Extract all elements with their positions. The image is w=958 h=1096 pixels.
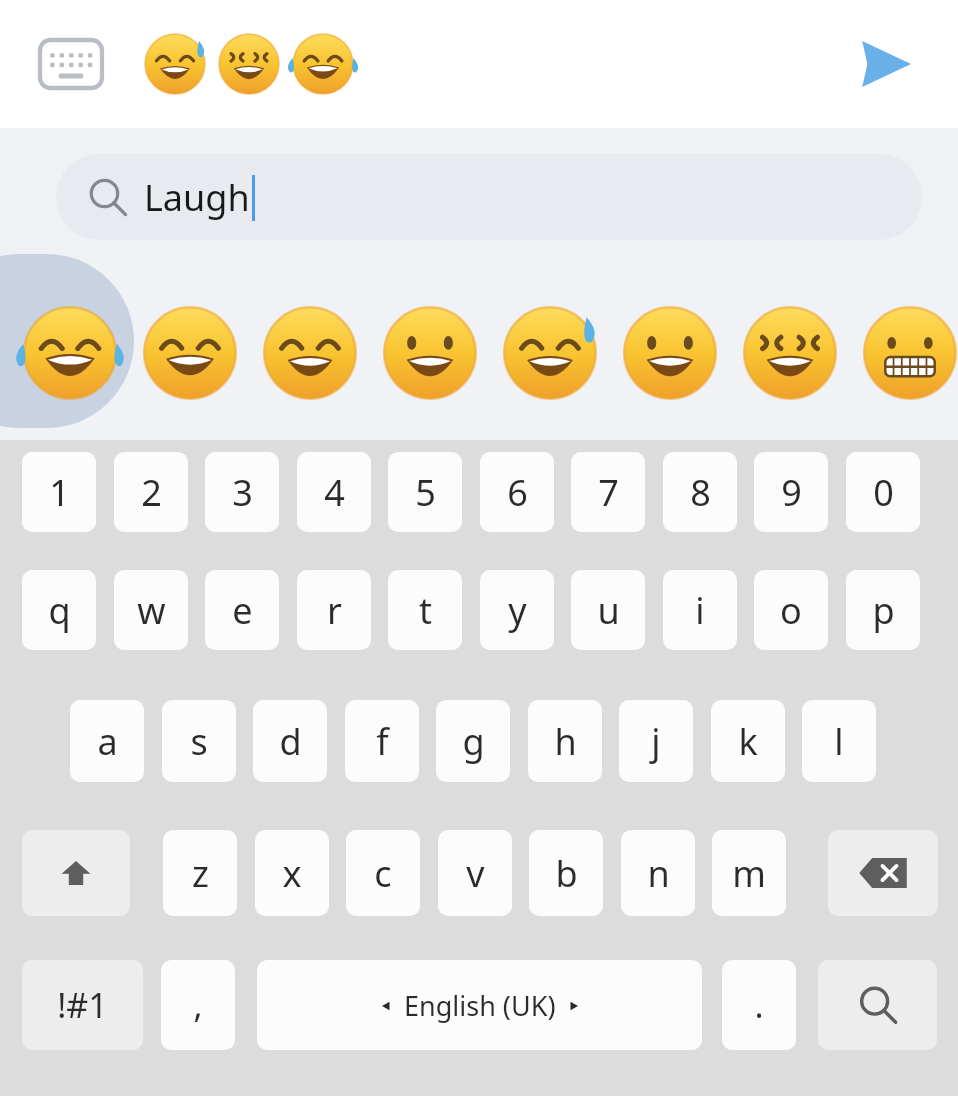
- button[interactable]: a: [70, 700, 144, 782]
- button[interactable]: 1: [22, 452, 96, 532]
- button[interactable]: Emoji result: [610, 293, 730, 413]
- staticText: z: [192, 849, 209, 898]
- staticText: k: [738, 717, 758, 766]
- button[interactable]: Emoji result: [250, 293, 370, 413]
- staticText: i: [695, 586, 705, 635]
- button[interactable]: Keyboard: [36, 38, 106, 90]
- button[interactable]: x: [255, 830, 329, 916]
- button[interactable]: Backspace: [828, 830, 938, 916]
- button[interactable]: h: [528, 700, 602, 782]
- button[interactable]: z: [163, 830, 237, 916]
- staticText: o: [780, 586, 802, 635]
- staticText: n: [647, 849, 670, 898]
- button[interactable]: b: [529, 830, 603, 916]
- button[interactable]: 6: [480, 452, 554, 532]
- staticText: w: [137, 586, 166, 635]
- staticText: 2: [141, 468, 162, 517]
- staticText: t: [419, 586, 432, 635]
- button[interactable]: l: [802, 700, 876, 782]
- staticText: c: [374, 849, 392, 898]
- button[interactable]: Space: [257, 960, 702, 1050]
- button[interactable]: m: [712, 830, 786, 916]
- staticText: x: [282, 849, 302, 898]
- button[interactable]: d: [253, 700, 327, 782]
- staticText: 6: [507, 468, 528, 517]
- staticText: r: [327, 586, 342, 635]
- button[interactable]: Recent emoji: [286, 27, 360, 101]
- button[interactable]: 8: [663, 452, 737, 532]
- staticText: 1: [49, 468, 70, 517]
- staticText: j: [651, 717, 661, 766]
- button[interactable]: Shift: [22, 830, 130, 916]
- staticText: l: [834, 717, 844, 766]
- button[interactable]: f: [345, 700, 419, 782]
- button[interactable]: .: [722, 960, 796, 1050]
- button[interactable]: e: [205, 570, 279, 650]
- button[interactable]: ,: [161, 960, 235, 1050]
- staticText: English (UK): [404, 987, 556, 1024]
- staticText: b: [555, 849, 578, 898]
- staticText: s: [190, 717, 208, 766]
- staticText: f: [376, 717, 389, 766]
- button[interactable]: 2: [114, 452, 188, 532]
- staticText: h: [554, 717, 577, 766]
- button[interactable]: k: [711, 700, 785, 782]
- staticText: 4: [324, 468, 345, 517]
- button[interactable]: Emoji result: [730, 293, 850, 413]
- staticText: a: [97, 717, 118, 766]
- button[interactable]: n: [621, 830, 695, 916]
- staticText: y: [508, 586, 527, 635]
- button[interactable]: s: [162, 700, 236, 782]
- staticText: ,: [193, 982, 203, 1028]
- button[interactable]: p: [846, 570, 920, 650]
- button[interactable]: j: [619, 700, 693, 782]
- button[interactable]: u: [571, 570, 645, 650]
- button[interactable]: w: [114, 570, 188, 650]
- button[interactable]: 4: [297, 452, 371, 532]
- staticText: 7: [598, 468, 619, 517]
- staticText: 8: [690, 468, 711, 517]
- staticText: q: [48, 586, 71, 635]
- staticText: !#1: [57, 982, 108, 1028]
- button[interactable]: v: [438, 830, 512, 916]
- button[interactable]: 0: [846, 452, 920, 532]
- staticText: Laugh: [144, 173, 250, 222]
- staticText: 9: [781, 468, 802, 517]
- staticText: p: [872, 586, 895, 635]
- button[interactable]: 3: [205, 452, 279, 532]
- staticText: .: [754, 982, 764, 1028]
- button[interactable]: Emoji result: [490, 293, 610, 413]
- button[interactable]: y: [480, 570, 554, 650]
- button[interactable]: Recent emoji: [212, 27, 286, 101]
- staticText: 0: [873, 468, 894, 517]
- button[interactable]: Search: [818, 960, 937, 1050]
- button[interactable]: 9: [754, 452, 828, 532]
- button[interactable]: t: [388, 570, 462, 650]
- button[interactable]: i: [663, 570, 737, 650]
- staticText: g: [462, 717, 485, 766]
- button[interactable]: Emoji result: [370, 293, 490, 413]
- staticText: e: [232, 586, 253, 635]
- button[interactable]: 5: [388, 452, 462, 532]
- button[interactable]: Emoji result: [10, 293, 130, 413]
- button[interactable]: c: [346, 830, 420, 916]
- button[interactable]: Recent emoji: [138, 27, 212, 101]
- button[interactable]: !#1: [22, 960, 143, 1050]
- staticText: m: [732, 849, 766, 898]
- staticText: u: [597, 586, 620, 635]
- button[interactable]: g: [436, 700, 510, 782]
- button[interactable]: 7: [571, 452, 645, 532]
- staticText: 5: [415, 468, 436, 517]
- button[interactable]: Emoji result: [850, 293, 958, 413]
- button[interactable]: o: [754, 570, 828, 650]
- button[interactable]: q: [22, 570, 96, 650]
- button[interactable]: Emoji result: [130, 293, 250, 413]
- staticText: v: [466, 849, 485, 898]
- staticText: 3: [232, 468, 253, 517]
- staticText: d: [279, 717, 302, 766]
- button[interactable]: r: [297, 570, 371, 650]
- button[interactable]: Laugh: [56, 154, 922, 240]
- button[interactable]: Send: [846, 26, 922, 102]
